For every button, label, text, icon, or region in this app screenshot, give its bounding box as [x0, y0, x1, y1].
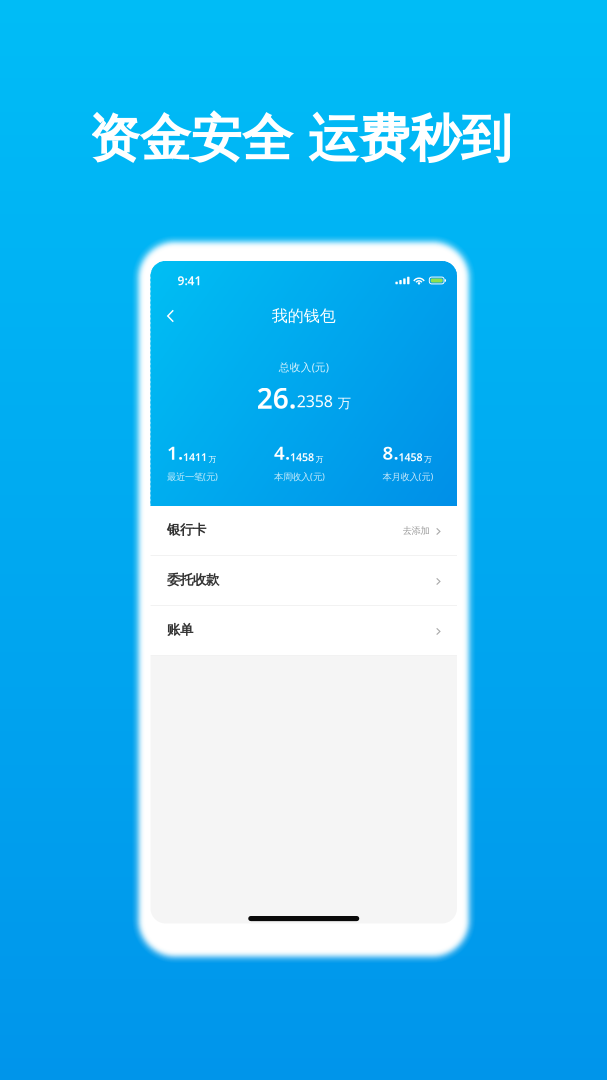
button[interactable]: 账单 — [150, 606, 457, 655]
staticText: 万 — [316, 454, 324, 464]
staticText: 2358 — [297, 390, 333, 411]
staticText: 8. — [382, 440, 398, 465]
staticText: 万 — [424, 454, 432, 464]
staticText: 总收入(元) — [279, 360, 329, 374]
staticText: 委托收款 — [167, 572, 219, 588]
staticText: 4. — [274, 440, 290, 465]
button[interactable]: 银行卡 — [150, 506, 457, 555]
staticText: 1458 — [398, 450, 422, 464]
staticText: 26. — [257, 379, 297, 417]
staticText: 1458 — [290, 450, 314, 464]
staticText: 去添加 — [403, 525, 430, 536]
staticText: 本月收入(元) — [382, 470, 433, 483]
staticText: 9:41 — [177, 272, 201, 288]
staticText: 资金安全 运费秒到 — [89, 108, 512, 170]
staticText: 1. — [167, 440, 183, 465]
button[interactable]: Back — [153, 300, 187, 332]
staticText: 万 — [338, 395, 351, 412]
staticText: 账单 — [167, 622, 193, 638]
staticText: 万 — [208, 454, 216, 464]
staticText: 本周收入(元) — [274, 470, 325, 483]
staticText: 我的钱包 — [272, 306, 336, 326]
staticText: 银行卡 — [167, 522, 206, 538]
button[interactable]: 委托收款 — [150, 556, 457, 605]
staticText: 1411 — [183, 450, 207, 464]
staticText: 最近一笔(元) — [167, 470, 218, 483]
